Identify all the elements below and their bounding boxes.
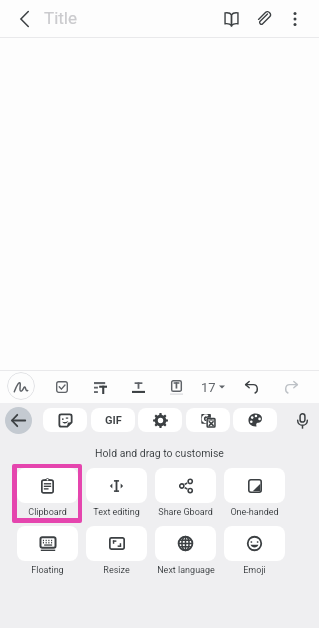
button[interactable]: Stickers xyxy=(43,408,87,432)
button[interactable]: Voice input xyxy=(289,407,316,434)
staticText: GIF xyxy=(105,414,122,427)
button[interactable]: Reading view xyxy=(213,0,249,37)
staticText: Text editing xyxy=(93,507,140,518)
button[interactable]: Undo xyxy=(238,371,266,403)
staticText: Emoji xyxy=(243,565,266,576)
button[interactable]: Translate xyxy=(186,408,230,432)
button[interactable]: Redo xyxy=(277,371,305,403)
button[interactable]: One-handed xyxy=(220,468,289,518)
button[interactable]: Resize xyxy=(82,526,151,576)
button[interactable]: Themes xyxy=(233,408,277,432)
button[interactable]: Paragraph style xyxy=(86,371,114,403)
button[interactable]: Attach file xyxy=(246,0,282,37)
button[interactable]: Keyboard settings xyxy=(138,408,182,432)
button[interactable]: Emoji xyxy=(220,526,289,576)
button[interactable]: Back xyxy=(6,1,42,37)
staticText: Resize xyxy=(103,565,130,576)
staticText: Title xyxy=(44,8,77,28)
button[interactable]: GIF xyxy=(91,408,135,432)
button[interactable]: Close toolbar xyxy=(5,407,32,434)
staticText: Share Gboard xyxy=(158,507,213,518)
staticText: 17 xyxy=(201,380,216,395)
button[interactable]: Floating xyxy=(13,526,82,576)
button[interactable]: Text editing xyxy=(82,468,151,518)
button[interactable]: Text box xyxy=(162,371,190,403)
button[interactable]: 17 xyxy=(201,371,225,403)
button[interactable]: Text format xyxy=(124,371,152,403)
button[interactable]: Next language xyxy=(151,526,220,576)
button[interactable]: More options xyxy=(277,0,313,37)
staticText: Floating xyxy=(31,565,64,576)
button[interactable]: Clipboard xyxy=(13,468,82,518)
staticText: One-handed xyxy=(230,507,279,518)
button[interactable]: Share Gboard xyxy=(151,468,220,518)
button[interactable]: Handwriting xyxy=(7,372,35,400)
staticText: Clipboard xyxy=(28,507,67,518)
button[interactable]: Checklist xyxy=(48,371,76,403)
staticText: Next language xyxy=(157,565,215,576)
staticText: Hold and drag to customise xyxy=(0,447,319,459)
